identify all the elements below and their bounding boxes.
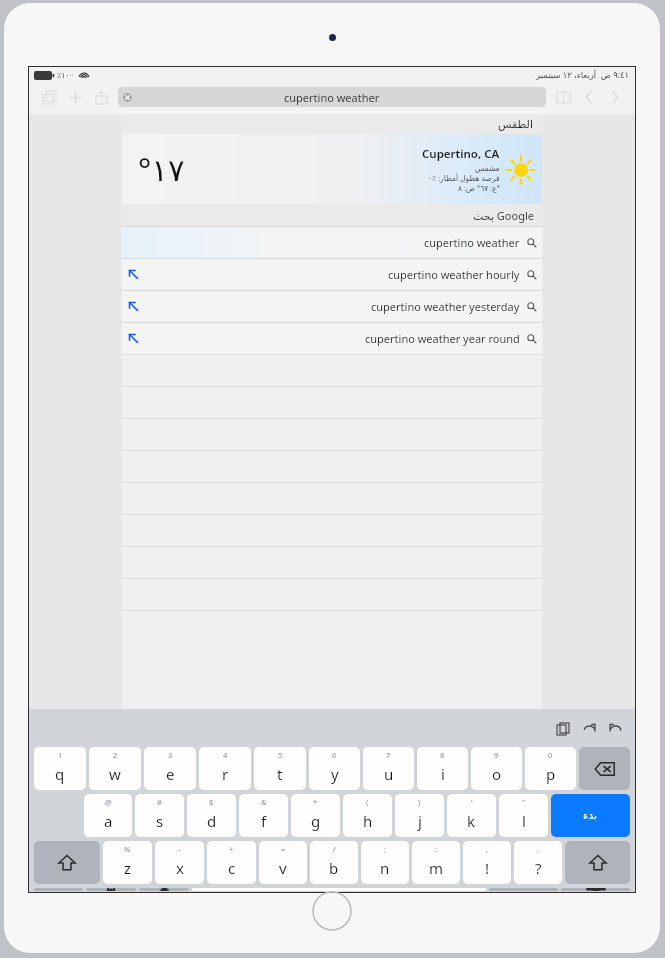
button[interactable]: Undo bbox=[602, 716, 628, 742]
staticText: e bbox=[166, 764, 175, 784]
button[interactable]: بدء bbox=[551, 794, 630, 837]
staticText: l bbox=[522, 811, 526, 831]
staticText: o bbox=[492, 764, 502, 784]
button[interactable]: ) bbox=[395, 794, 444, 837]
button[interactable]: . bbox=[514, 841, 562, 884]
button[interactable]: & bbox=[239, 794, 288, 837]
button[interactable]: Tabs bbox=[36, 84, 62, 110]
button[interactable]: 8 bbox=[417, 747, 468, 790]
button[interactable]: Redo bbox=[576, 716, 602, 742]
button[interactable]: * bbox=[291, 794, 340, 837]
button[interactable]: cupertino weather bbox=[122, 226, 542, 258]
staticText: / bbox=[333, 844, 336, 854]
staticText: r bbox=[222, 764, 229, 784]
button[interactable]: Shift bbox=[565, 841, 630, 884]
staticText: بحث Google bbox=[473, 208, 534, 223]
staticText: ' bbox=[471, 797, 473, 807]
button[interactable]: New tab bbox=[62, 84, 88, 110]
button[interactable]: / bbox=[310, 841, 358, 884]
staticText: * bbox=[313, 797, 318, 807]
button[interactable]: 4 bbox=[199, 747, 251, 790]
button[interactable]: @ bbox=[84, 794, 132, 837]
button[interactable]: °١٧ bbox=[122, 134, 542, 204]
staticText: 4 bbox=[223, 750, 228, 760]
button[interactable]: Shift bbox=[34, 841, 100, 884]
staticText: 5 bbox=[278, 750, 283, 760]
staticText: n bbox=[380, 858, 390, 878]
staticText: : bbox=[435, 844, 438, 854]
staticText: y bbox=[331, 764, 339, 784]
staticText: b bbox=[329, 858, 339, 878]
staticText: 0 bbox=[548, 750, 553, 760]
staticText: v bbox=[279, 858, 287, 878]
button[interactable]: + bbox=[207, 841, 256, 884]
staticText: f bbox=[261, 811, 267, 831]
staticText: Cupertino, CA bbox=[422, 146, 500, 162]
staticText: w bbox=[109, 764, 121, 784]
button[interactable]: Paste bbox=[550, 716, 576, 742]
staticText: 2 bbox=[113, 750, 118, 760]
button[interactable]: - bbox=[155, 841, 204, 884]
button[interactable]: 5 bbox=[254, 747, 306, 790]
button[interactable]: 6 bbox=[309, 747, 360, 790]
staticText: بدء bbox=[583, 809, 598, 822]
staticText: °١٧ bbox=[138, 148, 185, 190]
button[interactable]: cupertino weather year round bbox=[122, 322, 542, 354]
staticText: ) bbox=[418, 797, 421, 807]
staticText: a bbox=[104, 811, 113, 831]
button[interactable]: Dictation bbox=[139, 888, 189, 891]
button[interactable]: Hide keyboard bbox=[561, 888, 630, 891]
button[interactable]: Bookmarks bbox=[550, 84, 576, 110]
staticText: $ bbox=[209, 797, 214, 807]
button[interactable]: ; bbox=[361, 841, 409, 884]
staticText: cupertino weather bbox=[284, 90, 380, 105]
staticText: i bbox=[441, 764, 445, 784]
staticText: - bbox=[178, 844, 181, 854]
staticText: ٪١٠٠ bbox=[57, 71, 75, 80]
button[interactable]: Forward bbox=[602, 84, 628, 110]
button[interactable]: cupertino weather bbox=[118, 87, 546, 107]
button[interactable]: cupertino weather hourly bbox=[122, 258, 542, 290]
button[interactable]: Delete bbox=[579, 747, 630, 790]
button[interactable]: ( bbox=[343, 794, 392, 837]
button[interactable]: 9 bbox=[471, 747, 522, 790]
button[interactable]: 7 bbox=[363, 747, 414, 790]
staticText: x bbox=[176, 858, 184, 878]
staticText: z bbox=[124, 858, 132, 878]
staticText: , bbox=[486, 844, 489, 854]
staticText: m bbox=[429, 858, 444, 878]
staticText: g bbox=[311, 811, 321, 831]
button[interactable]: $ bbox=[187, 794, 236, 837]
staticText: c bbox=[228, 858, 236, 878]
staticText: ٩:٤١ ص أربعاء، ١٢ سبتمبر bbox=[536, 69, 630, 81]
staticText: h bbox=[363, 811, 373, 831]
button[interactable]: : bbox=[412, 841, 460, 884]
button[interactable]: Share bbox=[88, 84, 114, 110]
staticText: s bbox=[156, 811, 164, 831]
button[interactable]: % bbox=[103, 841, 152, 884]
staticText: % bbox=[124, 844, 131, 854]
button[interactable]: Back bbox=[576, 84, 602, 110]
button[interactable]: = bbox=[259, 841, 307, 884]
staticText: cupertino weather hourly bbox=[388, 267, 520, 282]
button[interactable]: 2 bbox=[89, 747, 141, 790]
button[interactable]: # bbox=[135, 794, 184, 837]
button[interactable]: 3 bbox=[144, 747, 196, 790]
button[interactable]: , bbox=[463, 841, 511, 884]
button[interactable]: ' bbox=[447, 794, 496, 837]
button[interactable]: Emoji bbox=[86, 888, 136, 891]
staticText: ! bbox=[485, 858, 490, 878]
button[interactable]: " bbox=[499, 794, 548, 837]
staticText: cupertino weather yesterday bbox=[371, 299, 520, 314]
button[interactable]: 0 bbox=[525, 747, 576, 790]
staticText: ع: ٦٧° ص: ٨° bbox=[458, 183, 500, 193]
button[interactable]: 1 bbox=[34, 747, 86, 790]
staticText: k bbox=[467, 811, 476, 831]
button[interactable]: cupertino weather yesterday bbox=[122, 290, 542, 322]
staticText: = bbox=[281, 844, 286, 854]
staticText: @ bbox=[105, 797, 112, 807]
